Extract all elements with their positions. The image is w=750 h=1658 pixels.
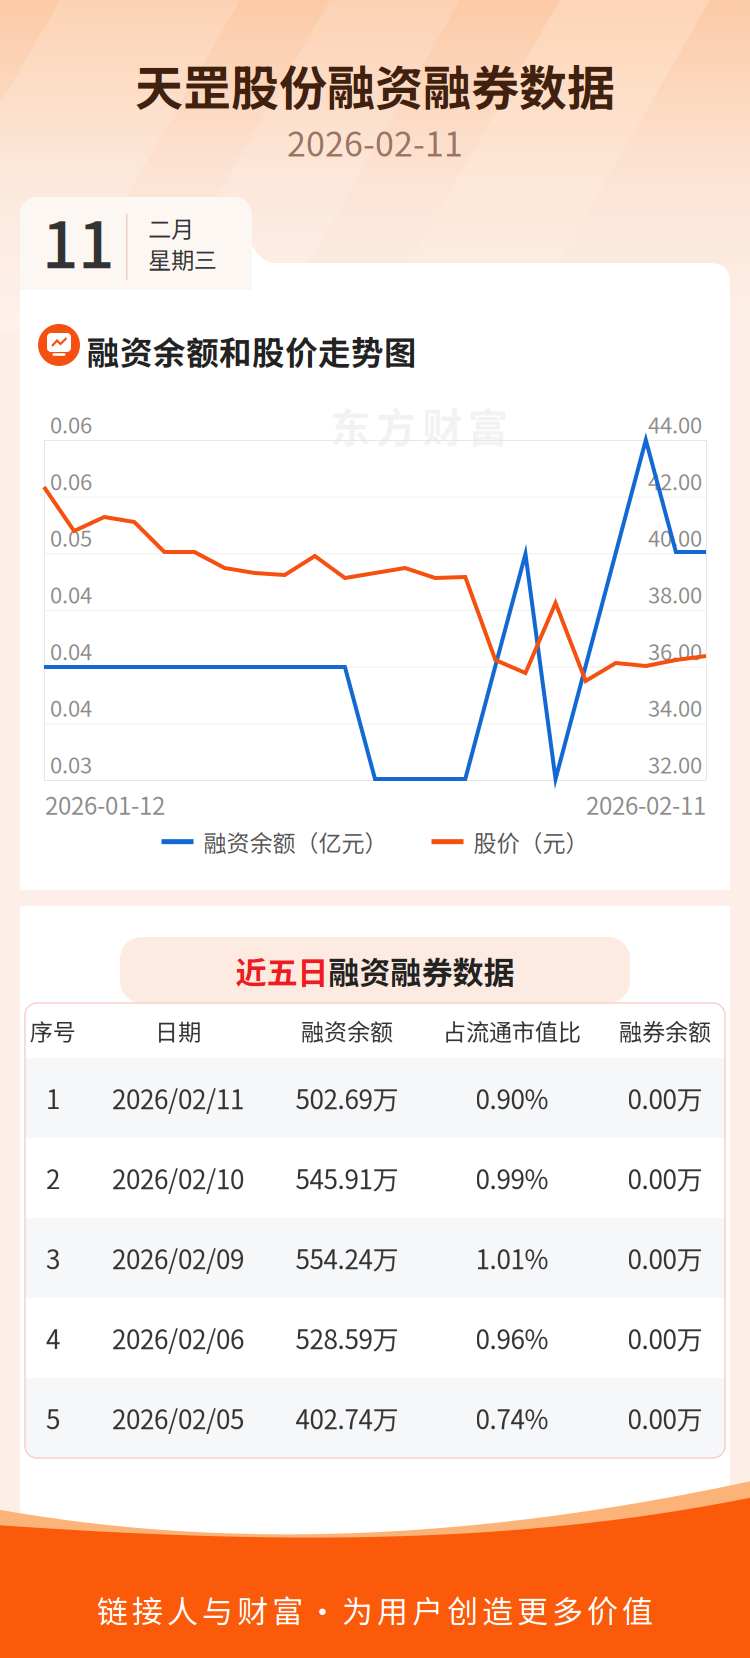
staticText: 3: [46, 1239, 60, 1277]
staticText: 2026/02/05: [112, 1399, 244, 1437]
staticText: 占流通市值比: [443, 1014, 581, 1047]
staticText: 0.00万: [627, 1159, 702, 1197]
staticText: 2026-02-11: [586, 787, 706, 822]
staticText: 4: [46, 1319, 60, 1357]
staticText: 0.04: [50, 578, 92, 610]
staticText: 0.99%: [475, 1159, 548, 1197]
staticText: 528.59万: [295, 1319, 398, 1357]
staticText: 日期: [155, 1014, 201, 1047]
staticText: 0.00万: [627, 1239, 702, 1277]
staticText: 11: [42, 194, 114, 287]
staticText: 近五日: [235, 948, 328, 993]
staticText: 0.03: [50, 748, 92, 780]
staticText: 2026/02/06: [112, 1319, 244, 1357]
staticText: 融资余额（亿元）: [203, 825, 387, 858]
staticText: 链接人与财富·为用户创造更多价值: [97, 1587, 653, 1632]
staticText: 34.00: [648, 691, 702, 723]
staticText: 402.74万: [295, 1399, 398, 1437]
staticText: 40.00: [648, 521, 702, 553]
staticText: 序号: [30, 1014, 76, 1047]
staticText: 股价（元）: [473, 825, 588, 858]
staticText: 融资余额: [301, 1014, 393, 1047]
staticText: 0.06: [50, 465, 92, 497]
staticText: 融资余额和股价走势图: [87, 327, 417, 374]
staticText: 32.00: [648, 748, 702, 780]
staticText: 1.01%: [475, 1239, 548, 1277]
staticText: 502.69万: [295, 1079, 398, 1117]
staticText: 554.24万: [295, 1239, 398, 1277]
staticText: 天罡股份融资融券数据: [135, 50, 615, 119]
staticText: 0.05: [50, 521, 92, 553]
staticText: 0.00万: [627, 1079, 702, 1117]
staticText: 2: [46, 1159, 60, 1197]
staticText: 2026-01-12: [45, 787, 165, 822]
staticText: 融券余额: [619, 1014, 711, 1047]
staticText: 545.91万: [295, 1159, 398, 1197]
staticText: 0.90%: [475, 1079, 548, 1117]
staticText: 0.00万: [627, 1399, 702, 1437]
staticText: 5: [46, 1399, 60, 1437]
staticText: 融资融券数据: [328, 948, 514, 993]
staticText: 2026/02/10: [112, 1159, 244, 1197]
staticText: 0.06: [50, 408, 92, 440]
staticText: 0.96%: [475, 1319, 548, 1357]
staticText: 2026/02/09: [112, 1239, 244, 1277]
staticText: 2026-02-11: [287, 117, 463, 166]
staticText: 0.04: [50, 691, 92, 723]
staticText: 0.74%: [475, 1399, 548, 1437]
staticText: 星期三: [148, 242, 217, 275]
staticText: 二月: [148, 211, 194, 244]
staticText: 2026/02/11: [112, 1079, 244, 1117]
staticText: 0.04: [50, 635, 92, 667]
staticText: 0.00万: [627, 1319, 702, 1357]
staticText: 1: [46, 1079, 60, 1117]
staticText: 42.00: [648, 465, 702, 497]
staticText: 38.00: [648, 578, 702, 610]
staticText: 东方财富: [330, 396, 508, 454]
staticText: 44.00: [648, 408, 702, 440]
staticText: 36.00: [648, 635, 702, 667]
